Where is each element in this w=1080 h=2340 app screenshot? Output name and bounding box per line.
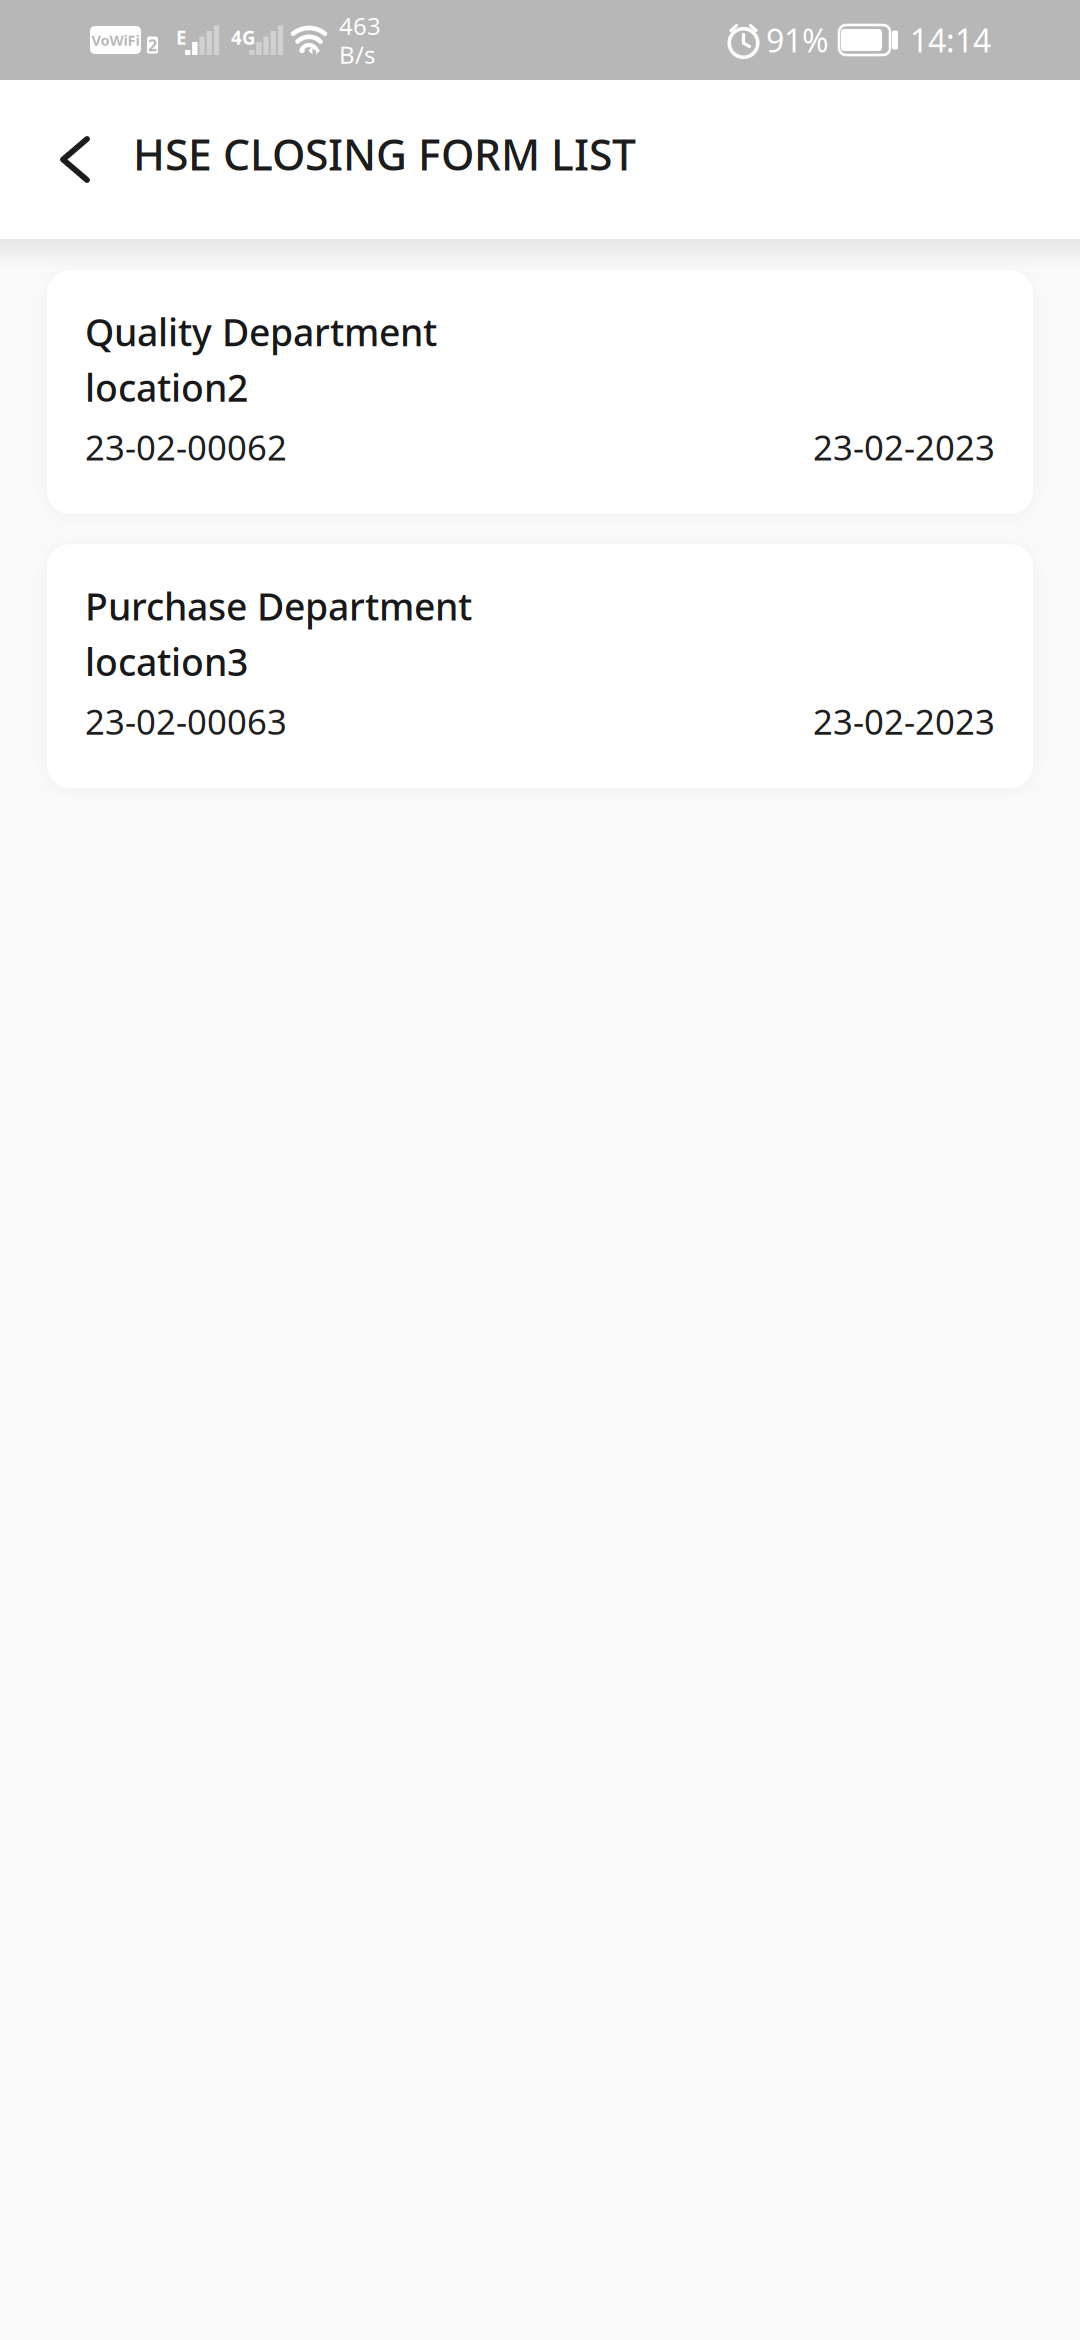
staticText: B/s (339, 38, 375, 70)
staticText: E (176, 25, 186, 50)
staticText: 14:14 (910, 19, 991, 61)
staticText: 2 (148, 34, 157, 56)
staticText: 23-02-00062 (85, 424, 287, 470)
staticText: Quality Department (85, 307, 437, 357)
staticText: VoWiFi (91, 30, 139, 50)
button[interactable]: Purchase Department (47, 544, 1033, 788)
staticText: HSE CLOSING FORM LIST (133, 126, 636, 182)
staticText: 4G (231, 25, 256, 50)
staticText: location2 (85, 363, 248, 412)
button[interactable]: Back (0, 80, 109, 239)
staticText: 463 (339, 10, 381, 41)
staticText: 91% (766, 19, 829, 61)
staticText: 23-02-2023 (813, 424, 995, 470)
button[interactable]: Quality Department (47, 270, 1033, 514)
staticText: 23-02-00063 (85, 698, 287, 744)
staticText: 23-02-2023 (813, 698, 995, 744)
staticText: Purchase Department (85, 581, 472, 631)
staticText: location3 (85, 637, 248, 686)
